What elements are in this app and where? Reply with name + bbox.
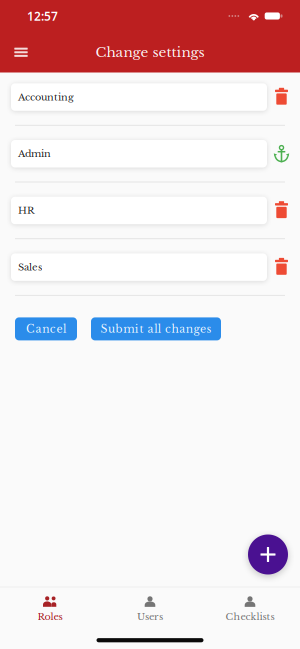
button[interactable]: Cancel <box>15 317 77 340</box>
button[interactable]: Submit all changes <box>91 317 221 340</box>
staticText: Cancel <box>26 322 66 335</box>
button[interactable]: Roles <box>0 587 100 628</box>
staticText: 12:57 <box>27 8 58 24</box>
staticText: Admin <box>18 148 51 160</box>
button[interactable]: Delete role <box>267 197 296 224</box>
staticText: Submit all changes <box>100 322 212 335</box>
staticText: HR <box>18 204 35 216</box>
staticText: Sales <box>18 261 42 273</box>
button[interactable]: Delete role <box>267 253 296 281</box>
staticText: Accounting <box>18 91 74 103</box>
button[interactable]: Checklists <box>200 587 300 628</box>
button[interactable]: Menu <box>4 34 38 70</box>
staticText: Users <box>137 611 163 622</box>
button[interactable]: Add role <box>248 534 288 574</box>
button[interactable]: Users <box>100 587 200 628</box>
staticText: Change settings <box>95 44 204 61</box>
button[interactable]: Delete role <box>267 83 296 111</box>
staticText: Checklists <box>225 611 274 622</box>
button[interactable]: Anchor role <box>267 140 296 167</box>
staticText: Roles <box>37 611 62 622</box>
